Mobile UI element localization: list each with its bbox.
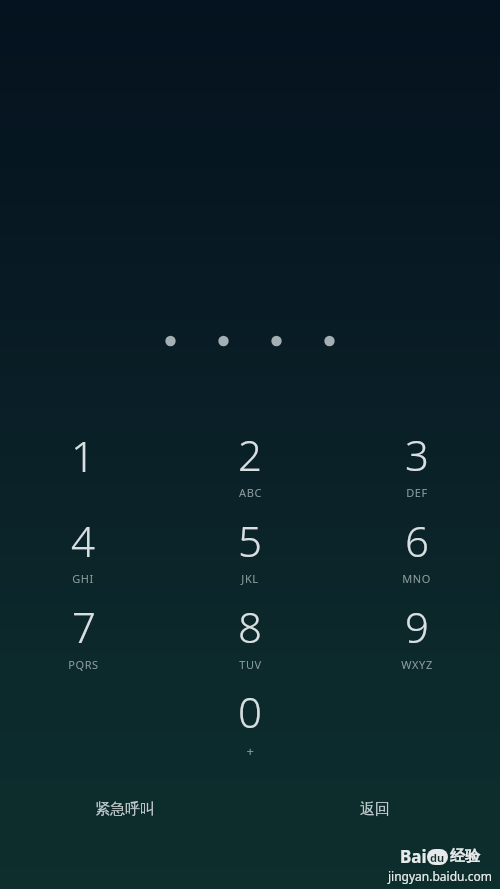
staticText: Bai <box>400 845 427 868</box>
staticText: du <box>430 850 445 865</box>
button[interactable]: 返回 <box>250 787 500 831</box>
staticText: 经验 <box>450 847 480 866</box>
button[interactable]: Key 8 <box>166 592 333 678</box>
staticText: 3 <box>405 426 429 483</box>
button[interactable]: Key 7 <box>0 592 166 678</box>
button[interactable]: Key 2 <box>166 420 333 506</box>
staticText: 7 <box>72 598 96 655</box>
staticText: 4 <box>71 512 95 569</box>
staticText: PQRS <box>68 657 99 672</box>
staticText: 返回 <box>360 800 390 819</box>
staticText: 9 <box>405 598 429 655</box>
staticText: jingyan.baidu.com <box>388 868 492 884</box>
staticText: WXYZ <box>401 657 433 672</box>
button[interactable]: Key 4 <box>0 506 166 592</box>
button[interactable]: Key 0 <box>166 678 333 764</box>
staticText: MNO <box>402 571 431 586</box>
staticText: 2 <box>238 426 262 483</box>
staticText: TUV <box>239 657 262 672</box>
button[interactable]: Key 9 <box>333 592 500 678</box>
staticText: JKL <box>241 571 259 586</box>
staticText: + <box>246 742 255 760</box>
button[interactable]: Key 6 <box>333 506 500 592</box>
staticText: 紧急呼叫 <box>95 800 155 819</box>
staticText: ABC <box>239 485 262 500</box>
button[interactable]: 紧急呼叫 <box>0 787 250 831</box>
staticText: DEF <box>406 485 428 500</box>
button[interactable]: Key 1 <box>0 420 166 506</box>
button[interactable]: Key 5 <box>166 506 333 592</box>
staticText: 0 <box>238 683 262 740</box>
button[interactable]: Key 3 <box>333 420 500 506</box>
staticText: 1 <box>71 427 95 484</box>
staticText: 8 <box>238 598 262 655</box>
staticText: GHI <box>72 571 94 586</box>
staticText: 6 <box>405 512 429 569</box>
staticText: 5 <box>238 512 262 569</box>
